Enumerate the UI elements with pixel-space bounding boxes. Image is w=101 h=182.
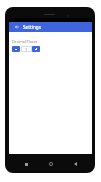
staticText: 1 <box>25 47 28 53</box>
staticText: Settings <box>23 24 41 30</box>
button[interactable]: Navigate up <box>12 22 21 32</box>
button[interactable]: Recent apps <box>19 157 33 171</box>
button[interactable]: Decrease decimal places <box>12 46 20 52</box>
button[interactable]: Increase decimal places <box>32 46 40 52</box>
staticText: Decimal Places <box>12 39 38 44</box>
button[interactable]: Home <box>44 157 58 171</box>
button[interactable]: Back <box>68 157 82 171</box>
